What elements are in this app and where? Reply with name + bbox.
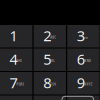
staticText: 6	[77, 49, 85, 69]
staticText: PQRS	[17, 83, 24, 86]
button[interactable]: 1	[0, 25, 32, 47]
staticText: MNO	[84, 59, 91, 63]
staticText: GHI	[17, 59, 22, 63]
button[interactable]: 7	[0, 72, 32, 94]
button[interactable]: 2	[34, 25, 66, 47]
staticText: 4	[10, 49, 18, 69]
staticText: DEF	[84, 36, 88, 39]
staticText: JKL	[50, 59, 54, 63]
button[interactable]: 3	[67, 25, 100, 47]
staticText: 9	[77, 73, 85, 92]
staticText: ABC	[50, 36, 56, 39]
staticText: 7	[10, 73, 18, 92]
staticText: TUV	[50, 83, 56, 86]
button[interactable]: 6	[67, 48, 100, 71]
staticText: 3	[77, 26, 85, 45]
button[interactable]: 0	[34, 95, 66, 100]
button[interactable]: #	[67, 95, 100, 100]
staticText: 2	[43, 26, 51, 45]
staticText: 5	[43, 49, 51, 69]
staticText: 1	[10, 26, 18, 45]
button[interactable]: Call	[62, 96, 93, 100]
button[interactable]: 9	[67, 72, 100, 94]
button[interactable]: 5	[34, 48, 66, 71]
staticText: WXYZ	[84, 83, 93, 86]
staticText: #	[76, 96, 85, 100]
button[interactable]: 8	[34, 72, 66, 94]
button[interactable]: 4	[0, 48, 32, 71]
staticText: 8	[43, 73, 51, 92]
